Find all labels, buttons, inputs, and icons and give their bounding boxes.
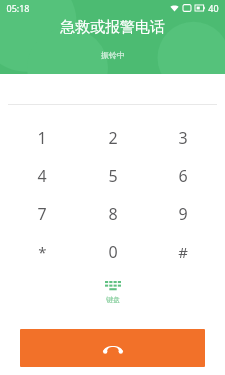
button[interactable]: * [13,233,71,271]
staticText: 急救或报警电话 [60,18,165,37]
button[interactable]: 8 [84,195,142,233]
button[interactable]: 0 [84,233,142,271]
button[interactable]: 7 [13,195,71,233]
button[interactable]: # [154,233,212,271]
button[interactable]: 4 [13,157,71,195]
staticText: 05:18 [6,2,30,14]
staticText: # [178,242,188,262]
staticText: 9 [178,203,188,225]
staticText: 40 [208,2,219,14]
staticText: 3 [178,127,188,149]
staticText: 0 [108,241,118,263]
button[interactable]: 3 [154,119,212,157]
staticText: 键盘 [106,295,120,304]
button[interactable]: 键盘 [89,279,137,306]
staticText: 8 [108,203,118,225]
staticText: 5 [108,165,118,187]
staticText: 振铃中 [101,50,125,60]
staticText: 4 [37,165,47,187]
button[interactable]: 1 [13,119,71,157]
button[interactable]: 5 [84,157,142,195]
staticText: * [38,242,47,262]
staticText: 7 [37,203,47,225]
button[interactable]: 9 [154,195,212,233]
button[interactable]: 6 [154,157,212,195]
staticText: 1 [37,127,47,149]
button[interactable]: 2 [84,119,142,157]
staticText: 2 [108,127,118,149]
button[interactable]: End call [20,329,205,367]
staticText: 6 [178,165,188,187]
